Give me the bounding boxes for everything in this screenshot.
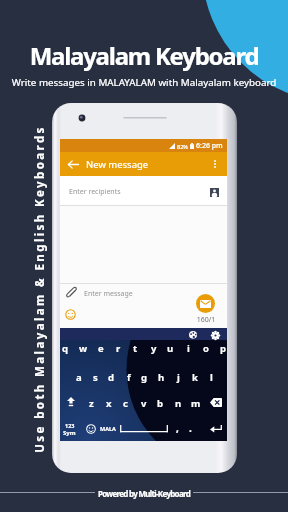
button[interactable]: b (152, 393, 169, 413)
button[interactable]: q (57, 338, 74, 358)
button[interactable]: y (145, 338, 162, 358)
staticText: 6:26 pm (196, 141, 223, 151)
staticText: q (62, 342, 69, 355)
button[interactable]: Use both Malayalam & English Keyboards (31, 119, 49, 459)
staticText: f (127, 371, 131, 384)
staticText: n (175, 397, 182, 410)
button[interactable]: i (180, 338, 197, 358)
button[interactable]: l (203, 367, 220, 387)
button[interactable]: v (135, 393, 152, 413)
button[interactable]: Keyboard settings (209, 329, 221, 341)
button[interactable]: p (215, 338, 232, 358)
staticText: x (106, 397, 112, 410)
button[interactable]: c (117, 393, 134, 413)
button[interactable]: Theme (187, 329, 199, 341)
staticText: Write messages in MALAYALAM with Malayal… (0, 76, 288, 89)
staticText: h (158, 371, 165, 384)
button[interactable]: Symbols (61, 420, 77, 438)
staticText: Sym (63, 429, 76, 437)
button[interactable]: g (136, 367, 153, 387)
staticText: Enter recipients (69, 187, 121, 197)
button[interactable]: Choose contact (210, 188, 219, 197)
button[interactable]: m (187, 393, 204, 413)
staticText: 160/1 (192, 315, 220, 325)
button[interactable]: Backspace (207, 394, 224, 411)
staticText: . (189, 421, 192, 435)
staticText: d (108, 371, 115, 384)
button[interactable]: r (110, 338, 127, 358)
button[interactable]: Back (60, 152, 227, 176)
button[interactable]: x (100, 393, 117, 413)
staticText: c (123, 397, 128, 410)
staticText: r (116, 342, 121, 355)
staticText: m (191, 397, 201, 410)
button[interactable]: Enter recipients (60, 176, 227, 206)
button[interactable]: s (87, 367, 104, 387)
staticText: p (220, 342, 227, 355)
button[interactable]: j (170, 367, 187, 387)
button[interactable]: Shift (62, 392, 79, 412)
staticText: 82% (177, 143, 188, 150)
staticText: w (79, 342, 88, 355)
staticText: k (192, 371, 198, 384)
button[interactable]: . (182, 418, 199, 438)
staticText: e (98, 342, 104, 355)
button[interactable]: f (120, 367, 137, 387)
button[interactable]: h (153, 367, 170, 387)
button[interactable]: Emoji keyboard (84, 422, 97, 435)
staticText: o (203, 342, 209, 355)
staticText: j (177, 371, 180, 384)
staticText: MALA (100, 425, 116, 432)
staticText: a (76, 371, 82, 384)
button[interactable]: More options (209, 158, 221, 170)
staticText: 123 (65, 422, 75, 429)
button[interactable]: Emoji (65, 309, 76, 320)
staticText: u (167, 342, 174, 355)
staticText: Enter message (84, 289, 133, 299)
staticText: i (187, 342, 190, 355)
button[interactable]: k (186, 367, 203, 387)
staticText: t (133, 342, 138, 355)
staticText: s (93, 371, 98, 384)
staticText: b (157, 397, 164, 410)
staticText: z (89, 397, 94, 410)
button[interactable]: Attach file (66, 287, 77, 298)
button[interactable]: o (197, 338, 214, 358)
staticText: v (141, 397, 147, 410)
button[interactable]: Send message (196, 294, 215, 313)
button[interactable]: t (127, 338, 144, 358)
staticText: l (210, 371, 213, 384)
button[interactable]: z (83, 393, 100, 413)
button[interactable]: MALA (99, 422, 116, 435)
staticText: y (151, 342, 157, 355)
staticText: , (176, 421, 179, 435)
staticText: New message (86, 158, 149, 171)
staticText: g (141, 371, 148, 384)
button[interactable]: Space (120, 422, 168, 434)
staticText: Use both Malayalam & English Keyboards (32, 119, 48, 459)
button[interactable]: u (162, 338, 179, 358)
button[interactable]: a (70, 367, 87, 387)
button[interactable]: w (75, 338, 92, 358)
staticText: Powered by Multi-Keyboard (0, 488, 288, 499)
button[interactable]: Enter (207, 421, 225, 435)
button[interactable]: , (169, 418, 186, 438)
button[interactable]: e (92, 338, 109, 358)
button[interactable]: d (103, 367, 120, 387)
staticText: Malayalam Keyboard (0, 39, 288, 72)
button[interactable]: n (170, 393, 187, 413)
button[interactable]: Back (65, 156, 81, 172)
